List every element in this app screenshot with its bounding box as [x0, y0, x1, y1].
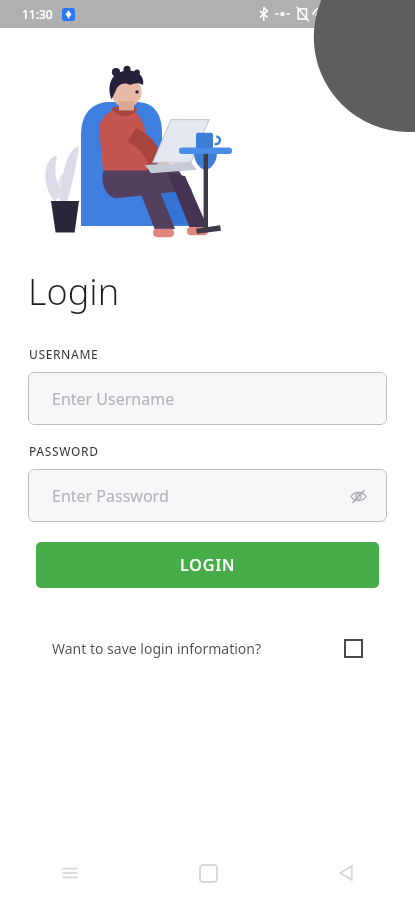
- staticText: Want to save login information?: [52, 639, 262, 658]
- button[interactable]: Want to save login information?: [52, 639, 363, 658]
- staticText: PASSWORD: [29, 443, 99, 459]
- staticText: USERNAME: [29, 346, 99, 362]
- button[interactable]: LOGIN: [36, 542, 379, 588]
- button[interactable]: Home: [139, 846, 277, 900]
- button[interactable]: Toggle password visibility: [347, 485, 369, 507]
- button[interactable]: Enter Password: [28, 469, 387, 522]
- staticText: Enter Username: [52, 388, 175, 410]
- staticText: LOGIN: [180, 554, 236, 576]
- button[interactable]: Enter Username: [28, 372, 387, 425]
- staticText: 11:30: [22, 6, 53, 22]
- staticText: Enter Password: [52, 485, 169, 507]
- button[interactable]: Back: [277, 846, 415, 900]
- button[interactable]: Recents: [0, 846, 139, 900]
- staticText: Login: [28, 267, 120, 316]
